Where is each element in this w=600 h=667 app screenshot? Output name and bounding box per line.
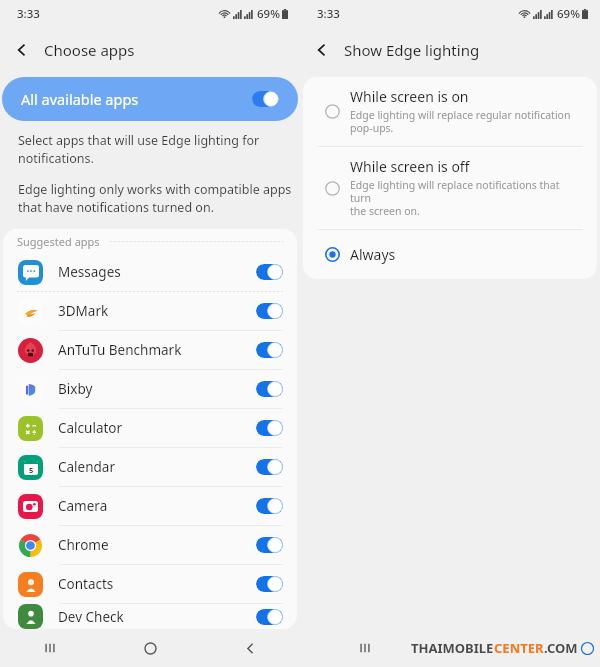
button[interactable]: Toggle [256, 381, 283, 397]
staticText: AnTuTu Benchmark [58, 341, 182, 359]
staticText: .COM [544, 639, 578, 657]
staticText: Show Edge lighting [344, 40, 480, 60]
button[interactable]: Back [300, 28, 344, 72]
button[interactable]: Always [303, 230, 597, 279]
button[interactable]: Toggle [256, 303, 283, 319]
staticText: Edge lighting will replace regular notif… [350, 108, 571, 135]
button[interactable]: While screen is off [303, 147, 597, 229]
button[interactable]: Messages [3, 253, 297, 291]
button[interactable]: Camera [3, 487, 297, 525]
staticText: Calculator [58, 419, 123, 437]
staticText: Messages [58, 263, 121, 281]
button[interactable]: Toggle [256, 264, 283, 280]
button[interactable]: Toggle [256, 459, 283, 475]
button[interactable]: Chrome [3, 526, 297, 564]
staticText: 5 [29, 465, 34, 475]
staticText: Select apps that will use Edge lighting … [18, 132, 260, 167]
staticText: Camera [58, 497, 108, 515]
staticText: Chrome [58, 536, 109, 554]
button[interactable]: Toggle [256, 498, 283, 514]
staticText: 3DMark [58, 302, 109, 320]
staticText: Dev Check [58, 608, 124, 626]
button[interactable]: Toggle [252, 91, 279, 107]
staticText: Choose apps [44, 40, 135, 60]
staticText: Bixby [58, 380, 93, 398]
staticText: Edge lighting will replace notifications… [350, 178, 583, 218]
staticText: Always [350, 245, 396, 264]
button[interactable]: While screen is on [303, 77, 597, 146]
button[interactable]: Toggle [256, 609, 283, 625]
button[interactable]: Back [200, 629, 300, 667]
button[interactable]: All available apps [2, 77, 298, 121]
staticText: Contacts [58, 575, 114, 593]
staticText: CENTER [494, 639, 544, 657]
button[interactable]: Toggle [256, 576, 283, 592]
staticText: 3:33 [317, 6, 340, 22]
staticText: While screen is off [350, 157, 470, 176]
staticText: Edge lighting only works with compatible… [18, 181, 292, 216]
button[interactable]: 3DMark [3, 292, 297, 330]
staticText: 3:33 [17, 6, 40, 22]
staticText: 69% [257, 6, 280, 22]
button[interactable]: Toggle [256, 420, 283, 436]
button[interactable]: AnTuTu Benchmark [3, 331, 297, 369]
staticText: Suggested apps [17, 234, 100, 249]
button[interactable]: Bixby [3, 370, 297, 408]
button[interactable]: Home [100, 629, 200, 667]
staticText: Calendar [58, 458, 115, 476]
button[interactable]: Toggle [256, 342, 283, 358]
staticText: While screen is on [350, 87, 469, 106]
button[interactable]: Calculator [3, 409, 297, 447]
button[interactable]: Contacts [3, 565, 297, 603]
button[interactable]: Recents [310, 629, 420, 667]
staticText: 69% [557, 6, 580, 22]
button[interactable]: Toggle [256, 537, 283, 553]
button[interactable]: 5 [3, 448, 297, 486]
button[interactable]: Dev Check [3, 604, 297, 629]
staticText: All available apps [21, 89, 139, 109]
button[interactable]: Recents [0, 629, 100, 667]
button[interactable]: Back [0, 28, 44, 72]
staticText: THAIMOBILE [411, 639, 494, 657]
